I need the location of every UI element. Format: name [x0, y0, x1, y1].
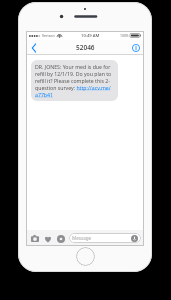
button[interactable]: Apps: [42, 233, 53, 244]
staticText: 10:49 AM: [81, 33, 100, 39]
button[interactable]: DR. JONES: Your med is due for refill by…: [31, 60, 118, 101]
staticText: Message: [72, 235, 92, 241]
button[interactable]: Message: [69, 233, 141, 243]
staticText: Verizon: [42, 33, 55, 38]
staticText: 52046: [76, 43, 95, 52]
button[interactable]: Photos: [55, 233, 66, 244]
button[interactable]: Details: [130, 42, 141, 53]
button[interactable]: Home: [76, 247, 95, 266]
staticText: DR. JONES: Your med is due for refill by…: [35, 63, 114, 98]
staticText: 100%: [120, 33, 129, 38]
button[interactable]: Camera: [29, 233, 40, 244]
button[interactable]: Record audio: [131, 235, 138, 242]
button[interactable]: Back: [28, 40, 40, 55]
